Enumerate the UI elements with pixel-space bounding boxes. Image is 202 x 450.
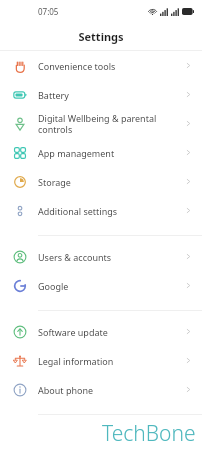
button[interactable]: Google — [0, 271, 202, 300]
button[interactable]: Additional settings — [0, 196, 202, 225]
button[interactable]: Storage — [0, 167, 202, 196]
button[interactable]: Digital Wellbeing & parental controls — [0, 109, 202, 138]
button[interactable]: Legal information — [0, 346, 202, 375]
staticText: Additional settings — [38, 205, 179, 217]
button[interactable]: Users & accounts — [0, 242, 202, 271]
button[interactable]: Battery — [0, 80, 202, 109]
staticText: Battery — [38, 89, 179, 101]
staticText: About phone — [38, 384, 179, 396]
staticText: Settings — [78, 29, 124, 44]
button[interactable]: About phone — [0, 375, 202, 404]
button[interactable]: Convenience tools — [0, 51, 202, 80]
staticText: Legal information — [38, 355, 179, 367]
staticText: Software update — [38, 326, 179, 338]
staticText: Convenience tools — [38, 60, 179, 72]
staticText: Storage — [38, 176, 179, 188]
button[interactable]: Software update — [0, 317, 202, 346]
staticText: TechBone — [102, 419, 196, 448]
staticText: Users & accounts — [38, 251, 179, 263]
button[interactable]: App management — [0, 138, 202, 167]
staticText: Google — [38, 280, 179, 292]
staticText: Digital Wellbeing & parental controls — [38, 112, 179, 136]
staticText: App management — [38, 147, 179, 159]
staticText: 07:05 — [38, 6, 59, 17]
